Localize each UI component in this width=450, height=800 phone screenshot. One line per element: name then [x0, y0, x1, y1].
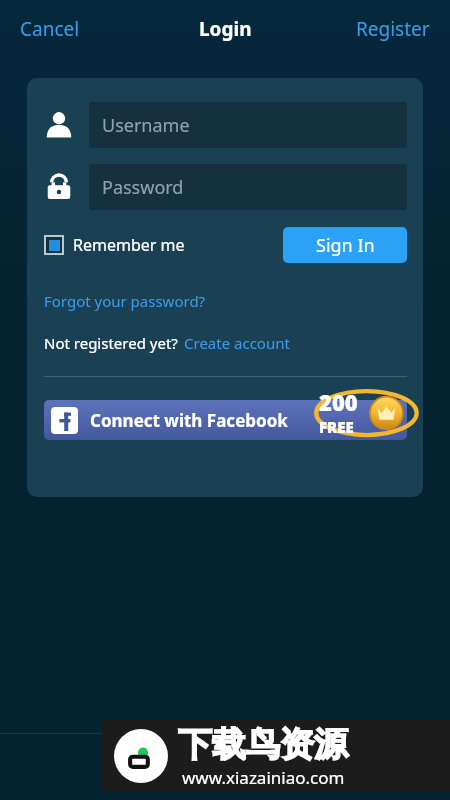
button[interactable]: Remember me: [44, 232, 185, 258]
staticText: FREE: [319, 417, 354, 437]
staticText: Password: [102, 175, 184, 200]
staticText: Username: [102, 113, 190, 138]
other: Username: [44, 110, 74, 140]
staticText: Create account: [184, 333, 290, 353]
button[interactable]: Sign In: [283, 227, 407, 263]
staticText: Not registered yet?: [44, 333, 178, 353]
staticText: Forgot your password?: [44, 291, 206, 311]
other: Password: [44, 172, 74, 202]
button[interactable]: Connect with Facebook: [44, 400, 407, 440]
button[interactable]: Cancel: [6, 8, 94, 50]
button[interactable]: Create account: [184, 330, 290, 356]
staticText: www.xiazainiao.com: [182, 766, 345, 789]
staticText: Sign In: [316, 233, 375, 258]
staticText: Cancel: [20, 16, 80, 42]
button[interactable]: Password: [89, 164, 407, 210]
staticText: 200: [319, 387, 358, 417]
staticText: 下载鸟资源: [178, 723, 348, 766]
button[interactable]: Username: [89, 102, 407, 148]
button[interactable]: Register: [342, 8, 444, 50]
staticText: Login: [199, 16, 252, 42]
staticText: Register: [356, 16, 430, 42]
staticText: Remember me: [73, 234, 185, 256]
button[interactable]: Forgot your password?: [44, 288, 206, 314]
staticText: Connect with Facebook: [90, 409, 288, 432]
